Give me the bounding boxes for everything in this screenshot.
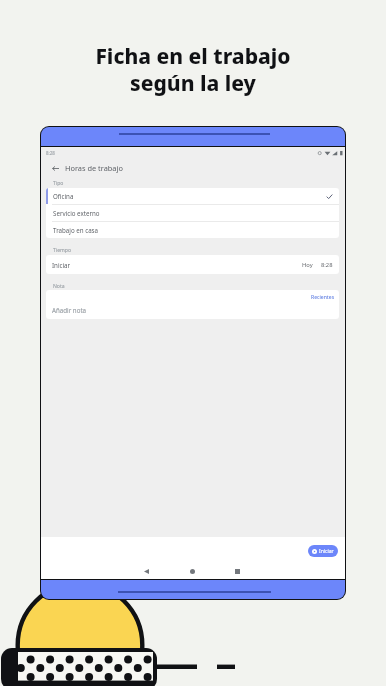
staticText: Tipo xyxy=(53,180,64,187)
staticText: Trabajo en casa xyxy=(53,226,99,234)
button[interactable]: Iniciar xyxy=(308,545,338,557)
staticText: Ficha en el trabajo según la ley xyxy=(0,42,386,97)
staticText: Recientes xyxy=(311,294,335,301)
staticText: Añadir nota xyxy=(52,306,87,314)
staticText: Horas de trabajo xyxy=(65,163,123,173)
staticText: 8:28 xyxy=(321,261,333,269)
button[interactable]: Servicio externo xyxy=(46,205,339,221)
staticText: Nota xyxy=(53,283,65,290)
staticText: Iniciar xyxy=(52,261,71,269)
button[interactable]: Añadir nota xyxy=(46,290,339,319)
button[interactable]: Trabajo en casa xyxy=(46,222,339,238)
button[interactable]: Iniciar xyxy=(46,255,339,274)
button[interactable]: Back xyxy=(48,161,62,175)
button[interactable]: Oficina xyxy=(46,188,339,204)
staticText: Iniciar xyxy=(319,548,334,555)
staticText: Tiempo xyxy=(53,247,71,254)
staticText: 8:28 xyxy=(46,150,55,156)
staticText: Oficina xyxy=(53,192,74,200)
staticText: Hoy xyxy=(302,261,313,269)
staticText: Servicio externo xyxy=(53,209,100,217)
button[interactable]: Recientes xyxy=(311,294,335,301)
